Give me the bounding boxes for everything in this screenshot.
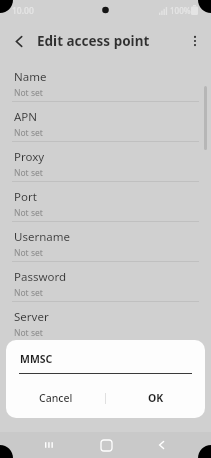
- staticText: Edit access point: [37, 32, 150, 50]
- staticText: Not set: [14, 87, 43, 99]
- staticText: Username: [14, 229, 70, 245]
- staticText: Port: [14, 189, 37, 205]
- button[interactable]: Server: [0, 302, 211, 342]
- staticText: Not set: [14, 327, 43, 339]
- button[interactable]: Proxy: [0, 142, 211, 182]
- staticText: Not set: [14, 287, 43, 299]
- button[interactable]: Recent apps: [31, 432, 67, 458]
- button[interactable]: Back: [144, 432, 180, 458]
- button[interactable]: Home: [91, 432, 121, 458]
- staticText: Not set: [14, 367, 43, 379]
- staticText: Not set: [14, 167, 43, 179]
- button[interactable]: Cancel: [6, 386, 105, 410]
- staticText: Name: [14, 69, 47, 85]
- button[interactable]: More options: [182, 28, 208, 54]
- staticText: 10.00: [12, 5, 34, 17]
- button[interactable]: Name: [0, 62, 211, 102]
- button[interactable]: MMSC: [0, 342, 211, 382]
- button[interactable]: APN: [0, 102, 211, 142]
- staticText: Server: [14, 309, 49, 325]
- staticText: APN: [14, 109, 38, 125]
- staticText: 100%: [170, 5, 191, 16]
- staticText: Not set: [14, 247, 43, 259]
- button[interactable]: Navigate up: [6, 28, 32, 54]
- staticText: Not set: [14, 127, 43, 139]
- staticText: OK: [148, 391, 164, 405]
- staticText: Proxy: [14, 149, 45, 165]
- staticText: Not set: [14, 207, 43, 219]
- staticText: MMSC: [14, 349, 49, 365]
- button[interactable]: Port: [0, 182, 211, 222]
- staticText: MMSC: [20, 352, 53, 366]
- staticText: Password: [14, 269, 67, 285]
- button[interactable]: Password: [0, 262, 211, 302]
- button[interactable]: Username: [0, 222, 211, 262]
- staticText: Cancel: [39, 391, 73, 405]
- button[interactable]: OK: [106, 386, 205, 410]
